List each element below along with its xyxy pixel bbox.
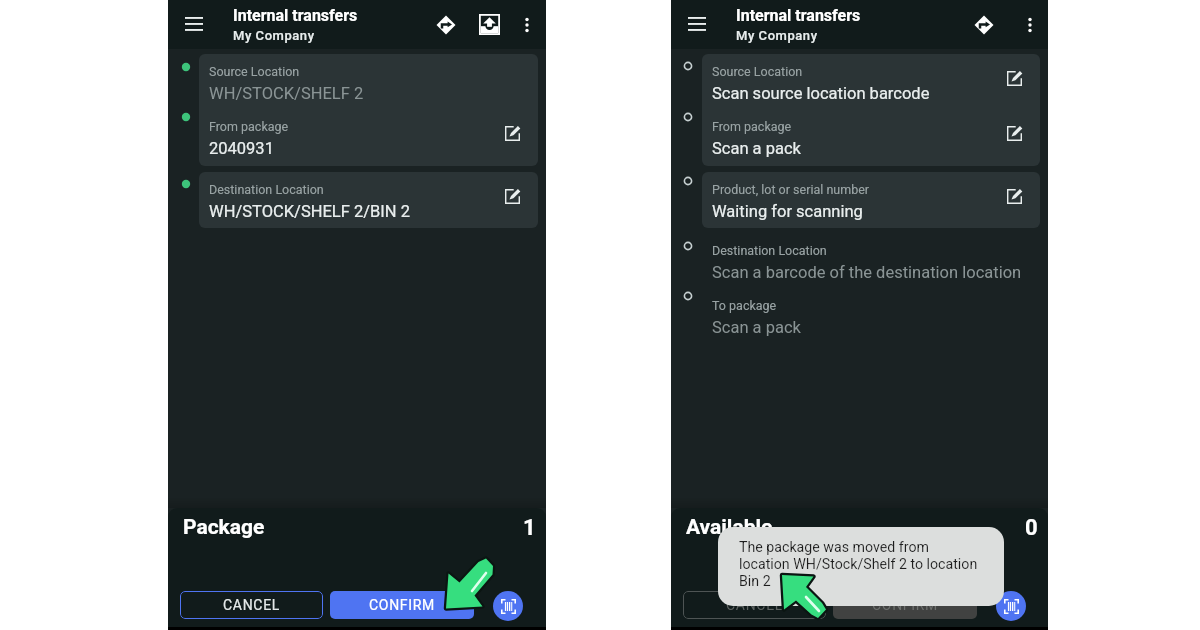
button[interactable]: Move to inbox xyxy=(474,9,504,39)
button[interactable]: From package xyxy=(199,109,538,164)
button[interactable]: CONFIRM xyxy=(330,591,474,619)
button[interactable]: Source Location xyxy=(702,54,1040,109)
button[interactable]: Edit Destination Location xyxy=(501,185,523,207)
button[interactable]: Open navigation menu xyxy=(681,8,712,39)
staticText: Internal transfers xyxy=(736,6,861,25)
staticText: My Company xyxy=(736,28,818,43)
staticText: Scan a pack xyxy=(712,318,801,337)
staticText: Destination Location xyxy=(209,182,324,197)
staticText: Source Location xyxy=(712,64,803,79)
button[interactable]: Product, lot or serial number xyxy=(702,172,1040,227)
button[interactable]: To package xyxy=(702,288,1040,343)
staticText: Package xyxy=(183,515,265,540)
staticText: Scan a pack xyxy=(712,139,801,158)
button[interactable]: Source Location xyxy=(199,54,538,109)
button[interactable]: CANCEL xyxy=(683,591,826,619)
staticText: To package xyxy=(712,298,777,313)
button[interactable]: Directions xyxy=(969,10,999,40)
button[interactable]: Destination Location xyxy=(199,172,538,227)
staticText: CONFIRM xyxy=(872,597,939,613)
button[interactable]: CONFIRM xyxy=(833,591,977,619)
button[interactable]: Edit From package xyxy=(501,122,523,144)
button[interactable]: Scan barcode xyxy=(493,591,523,621)
staticText: 0 xyxy=(1025,515,1038,541)
staticText: Waiting for scanning xyxy=(712,202,863,221)
staticText: Internal transfers xyxy=(233,6,358,25)
button[interactable]: Destination Location xyxy=(702,233,1040,288)
staticText: WH/STOCK/SHELF 2 xyxy=(209,84,364,103)
staticText: CANCEL xyxy=(223,597,281,613)
staticText: From package xyxy=(209,119,289,134)
staticText: My Company xyxy=(233,28,315,43)
button[interactable]: CANCEL xyxy=(180,591,323,619)
button[interactable]: Edit From package xyxy=(1003,122,1025,144)
button[interactable]: Edit Product, lot or serial number xyxy=(1003,185,1025,207)
button[interactable]: More options xyxy=(1015,10,1045,40)
staticText: CONFIRM xyxy=(369,597,436,613)
button[interactable]: Edit Source Location xyxy=(1003,67,1025,89)
button[interactable]: More options xyxy=(512,10,542,40)
staticText: Source Location xyxy=(209,64,300,79)
button[interactable]: Open navigation menu xyxy=(178,8,209,39)
staticText: 2040931 xyxy=(209,139,274,158)
button[interactable]: From package xyxy=(702,109,1040,164)
button[interactable]: Scan barcode xyxy=(996,591,1026,621)
staticText: Available xyxy=(686,515,773,540)
staticText: Destination Location xyxy=(712,243,827,258)
staticText: Scan a barcode of the destination locati… xyxy=(712,263,1022,282)
staticText: CANCEL xyxy=(726,597,784,613)
staticText: From package xyxy=(712,119,792,134)
staticText: WH/STOCK/SHELF 2/BIN 2 xyxy=(209,202,410,221)
button[interactable]: Directions xyxy=(431,10,461,40)
staticText: Product, lot or serial number xyxy=(712,182,870,197)
staticText: Scan source location barcode xyxy=(712,84,930,103)
staticText: 1 xyxy=(523,515,536,541)
staticText: The package was moved from location WH/S… xyxy=(739,539,978,590)
